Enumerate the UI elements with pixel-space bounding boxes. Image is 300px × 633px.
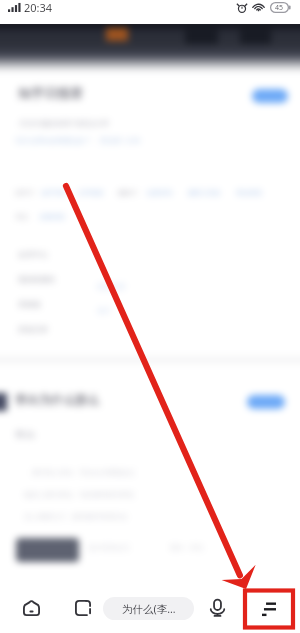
staticText: 45 (275, 3, 284, 13)
staticText: 知乎专栏 (41, 189, 67, 197)
staticText: 为什么(李… (122, 602, 176, 616)
staticText: 草稿箱 (18, 300, 41, 309)
button[interactable]: Voice search (200, 593, 235, 623)
staticText: 知乎日报君 (18, 85, 83, 101)
staticText: 李白 (15, 428, 35, 441)
button[interactable]: Tabs (62, 593, 103, 623)
staticText: 编辑于 (118, 189, 138, 197)
staticText: 查看全部 (97, 282, 125, 291)
button[interactable]: Home (9, 593, 54, 623)
button[interactable]: 为什么(李… (103, 597, 194, 620)
staticText: 我的收藏夹 (18, 275, 56, 284)
staticText: 为什么李白的诗那么好？ 关注者 1,234 (15, 136, 140, 146)
staticText: 20:34 (24, 0, 53, 15)
staticText: 李白为什么那么 (15, 392, 99, 407)
button[interactable]: Menu (253, 593, 285, 623)
